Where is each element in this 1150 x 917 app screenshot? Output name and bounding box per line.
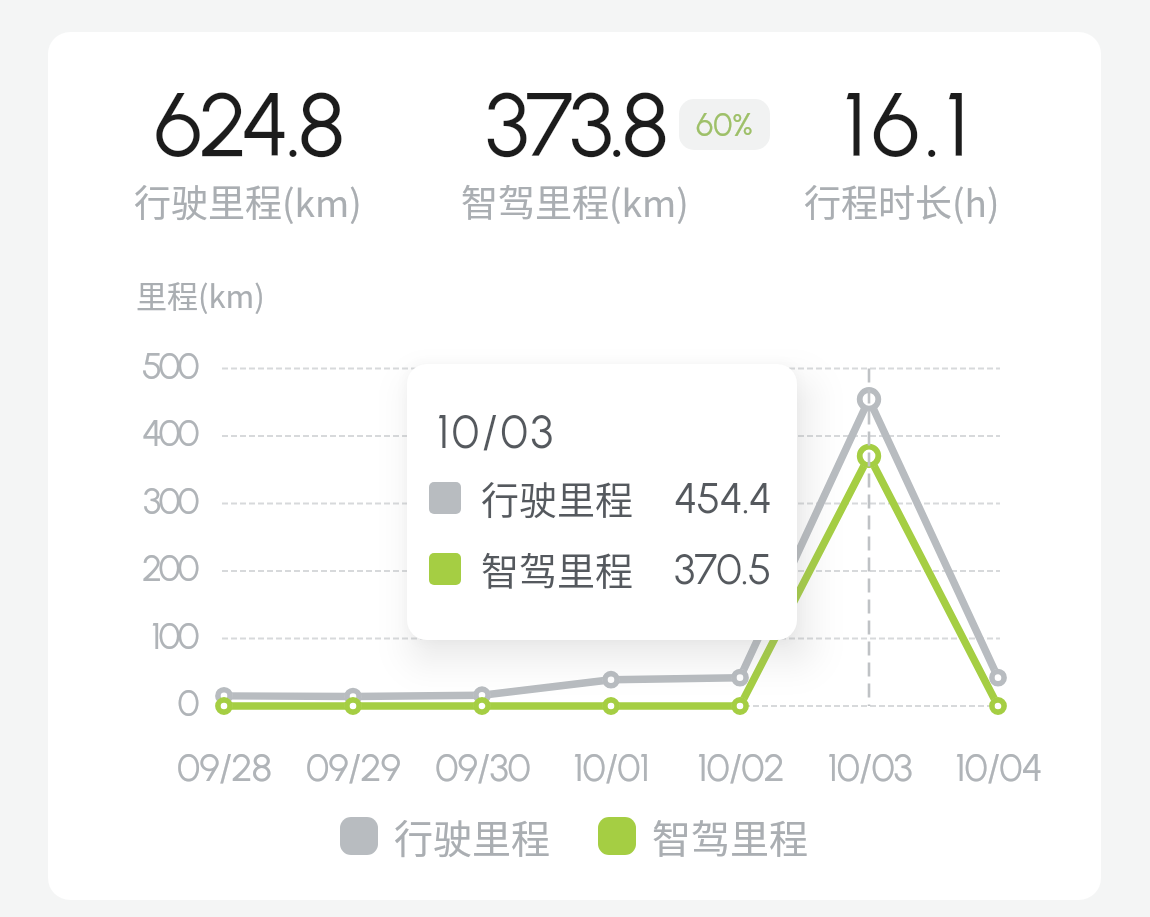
staticText: 行驶里程(km) [134,174,362,228]
staticText: 400 [142,411,197,455]
staticText: 16.1 [843,70,974,178]
staticText: 10/02 [697,744,784,791]
staticText: 智驾里程(km) [461,174,689,228]
button[interactable]: 行驶里程 [340,808,551,864]
staticText: 300 [142,479,197,523]
staticText: 373.8 [485,70,665,178]
button[interactable]: 16.1 [738,70,1065,232]
staticText: 100 [151,614,197,658]
staticText: 60% [696,106,753,144]
staticText: 0 [177,681,197,725]
staticText: 10/01 [573,744,649,791]
staticText: 624.8 [154,70,342,178]
staticText: 行驶里程 [481,470,634,525]
staticText: 里程(km) [136,272,265,317]
staticText: 行程时长(h) [804,174,1000,228]
staticText: 10/03 [437,404,556,459]
staticText: 454.4 [674,472,772,524]
staticText: 09/30 [435,744,530,791]
staticText: 09/29 [306,744,400,791]
staticText: 10/03 [827,744,912,791]
button[interactable]: 624.8 [84,70,411,232]
staticText: 370.5 [674,543,771,595]
button[interactable]: 10/03 [407,364,797,640]
button[interactable]: 智驾里程 [598,808,809,864]
staticText: 09/28 [177,744,271,791]
staticText: 500 [141,344,197,388]
staticText: 智驾里程 [481,541,634,596]
staticText: 10/04 [955,744,1042,791]
staticText: 200 [141,546,197,590]
staticText: 智驾里程 [652,808,809,864]
staticText: 行驶里程 [394,808,551,864]
button[interactable]: 373.8 [411,70,738,232]
